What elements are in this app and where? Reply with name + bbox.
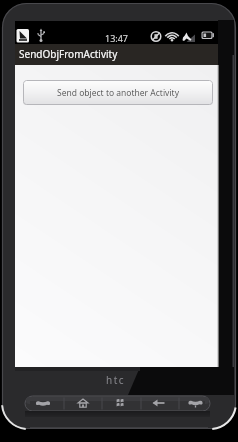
button[interactable] <box>102 396 141 411</box>
staticText: htc <box>106 373 126 387</box>
button[interactable] <box>64 396 102 411</box>
button[interactable]: Send object to another Activity <box>23 80 213 105</box>
button[interactable] <box>141 396 179 411</box>
button[interactable] <box>25 396 64 411</box>
staticText: 13:47 <box>105 32 129 44</box>
staticText: Send object to another Activity <box>57 87 179 99</box>
staticText: SendObjFromActivity <box>19 47 118 61</box>
button[interactable] <box>179 396 210 411</box>
